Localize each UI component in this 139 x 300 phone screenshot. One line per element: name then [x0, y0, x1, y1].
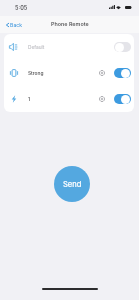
staticText: Phone Remote [51, 21, 89, 28]
staticText: 5:05 [15, 5, 28, 12]
button[interactable]: Back [4, 19, 25, 31]
staticText: Strong [28, 70, 44, 76]
button[interactable]: 1 [4, 86, 134, 112]
button[interactable]: Strong [4, 60, 134, 86]
staticText: Back [10, 22, 23, 28]
button[interactable]: Options [99, 96, 105, 102]
staticText: 1 [28, 96, 31, 102]
button[interactable]: Toggle off [114, 42, 131, 52]
button[interactable]: Toggle on [114, 94, 131, 104]
button[interactable]: Toggle on [114, 68, 131, 78]
button[interactable]: Default [4, 34, 134, 60]
button[interactable]: Options [99, 70, 105, 76]
staticText: Default [28, 44, 45, 50]
button[interactable]: Send [54, 166, 90, 202]
staticText: Send [63, 180, 82, 189]
